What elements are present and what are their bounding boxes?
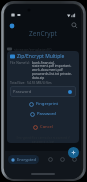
staticText: File Name(s): xyxy=(10,60,30,64)
staticText: Zip/Encrypt Multiple xyxy=(17,53,65,60)
button[interactable]: Password xyxy=(7,111,79,117)
staticText: Cancel xyxy=(40,124,54,130)
staticText: Password xyxy=(13,89,32,94)
staticText: ZenCrypt xyxy=(29,29,57,38)
staticText: Encrypted xyxy=(17,157,36,162)
staticText: Total Size: 54.55 MB/4 files xyxy=(10,80,52,84)
button[interactable]: Encrypted xyxy=(8,155,39,164)
staticText: bank-financial-statement.pdf important-w… xyxy=(32,60,76,80)
button[interactable]: Fingerprint xyxy=(7,101,79,107)
button[interactable]: Search xyxy=(69,20,80,31)
button[interactable]: Sort xyxy=(58,155,67,164)
button[interactable]: Settings xyxy=(70,155,79,164)
button[interactable]: Cancel xyxy=(7,124,79,130)
button[interactable]: Show password xyxy=(66,88,73,95)
staticText: Fingerprint xyxy=(36,101,58,107)
button[interactable]: Favorites xyxy=(46,155,55,164)
button[interactable]: Menu xyxy=(6,20,17,31)
staticText: storage/emulated/0 xyxy=(14,47,52,52)
staticText: Password xyxy=(37,111,56,117)
button[interactable]: Add xyxy=(68,147,79,158)
